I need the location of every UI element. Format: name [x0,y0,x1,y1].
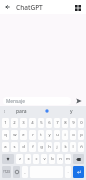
button[interactable]: Back [3,2,13,12]
staticText: n [59,156,62,162]
staticText: 6 [48,120,51,126]
button[interactable]: x [25,154,31,164]
button[interactable]: r [29,130,36,140]
staticText: ñ [80,144,83,150]
button[interactable]: Symbols [2,166,11,178]
staticText: c [35,156,38,162]
button[interactable]: c [33,154,39,164]
staticText: i [64,132,66,138]
staticText: 2 [13,120,16,126]
button[interactable]: 1 [2,118,9,128]
button[interactable]: Shift [2,154,14,164]
button[interactable]: para [9,106,34,116]
button[interactable]: q [2,130,9,140]
button[interactable]: k [62,142,68,152]
button[interactable]: 9 [70,118,76,128]
staticText: ChatGPT [16,3,43,12]
button[interactable]: y [46,130,52,140]
staticText: f [32,144,34,150]
staticText: 7 [56,120,59,126]
button[interactable]: u [54,130,60,140]
staticText: j [56,144,58,150]
button[interactable]: i [62,130,68,140]
staticText: a [4,144,7,150]
button[interactable]: 2 [11,118,18,128]
staticText: q [4,132,7,138]
button[interactable]: e [20,130,27,140]
button[interactable]: 6 [46,118,52,128]
button[interactable]: 8 [62,118,68,128]
staticText: d [22,144,25,150]
staticText: ?123 [3,170,10,174]
staticText: 8 [64,120,67,126]
staticText: l [72,144,74,150]
button[interactable]: Enter [73,166,84,178]
staticText: z [19,156,21,162]
button[interactable]: l [70,142,76,152]
staticText: u [56,132,59,138]
staticText: t [40,132,42,138]
button[interactable]: v [41,154,47,164]
button[interactable]: y [59,106,84,116]
staticText: 9 [72,120,75,126]
button[interactable]: Backspace [73,154,84,164]
staticText: p [80,132,83,138]
staticText: k [64,144,67,150]
button[interactable]: j [54,142,60,152]
button[interactable]: Apps [72,2,83,13]
staticText: x [27,156,30,162]
staticText: para [16,108,27,115]
button[interactable]: Emoji [13,166,20,178]
staticText: Mensaje [6,98,25,105]
button[interactable]: m [65,154,71,164]
staticText: 3 [22,120,25,126]
staticText: 1 [4,120,7,126]
staticText: g [40,144,43,150]
staticText: 5 [40,120,43,126]
button[interactable]: f [29,142,36,152]
button[interactable]: 5 [38,118,44,128]
staticText: v [43,156,46,162]
button[interactable]: 0 [78,118,84,128]
button[interactable]: Send [74,96,83,105]
button[interactable]: Mensaje [3,97,71,105]
button[interactable]: ñ [78,142,84,152]
button[interactable]: , [22,166,28,178]
button[interactable]: z [16,154,23,164]
staticText: y [70,108,73,115]
button[interactable]: 3 [20,118,27,128]
staticText: e [22,132,25,138]
staticText: r [32,132,34,138]
button[interactable]: a [2,142,9,152]
staticText: 4 [31,120,34,126]
staticText: m [66,156,70,162]
staticText: b [51,156,54,162]
staticText: h [48,144,51,150]
staticText: o [72,132,75,138]
button[interactable]: d [20,142,27,152]
button[interactable]: p [78,130,84,140]
staticText: , [24,169,26,175]
button[interactable]: g [38,142,44,152]
button[interactable]: 4 [29,118,36,128]
button[interactable]: 7 [54,118,60,128]
button[interactable]: h [46,142,52,152]
staticText: . [67,169,69,175]
button[interactable]: o [70,130,76,140]
button[interactable]: n [57,154,63,164]
staticText: y [48,132,51,138]
staticText: s [13,144,16,150]
button[interactable]: b [49,154,55,164]
staticText: 0 [80,120,83,126]
button[interactable]: w [11,130,18,140]
button[interactable]: Emoji suggestion [34,106,59,116]
button[interactable]: t [38,130,44,140]
button[interactable]: s [11,142,18,152]
staticText: w [13,132,17,138]
button[interactable]: Keyboard options [0,106,9,116]
